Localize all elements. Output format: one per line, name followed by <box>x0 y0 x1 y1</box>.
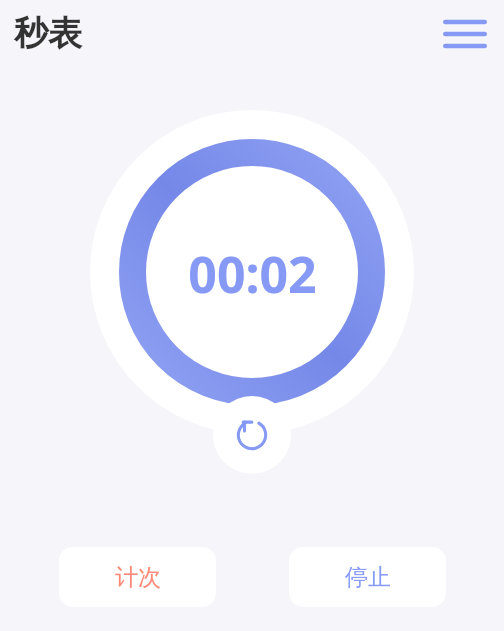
button[interactable]: Reset <box>213 396 291 474</box>
staticText: 停止 <box>345 563 391 592</box>
button[interactable]: 计次 <box>59 547 216 607</box>
button[interactable]: Menu <box>434 8 496 60</box>
staticText: 00:02 <box>188 240 317 304</box>
staticText: 秒表 <box>14 12 82 55</box>
button[interactable]: 停止 <box>289 547 446 607</box>
staticText: 计次 <box>115 563 161 592</box>
